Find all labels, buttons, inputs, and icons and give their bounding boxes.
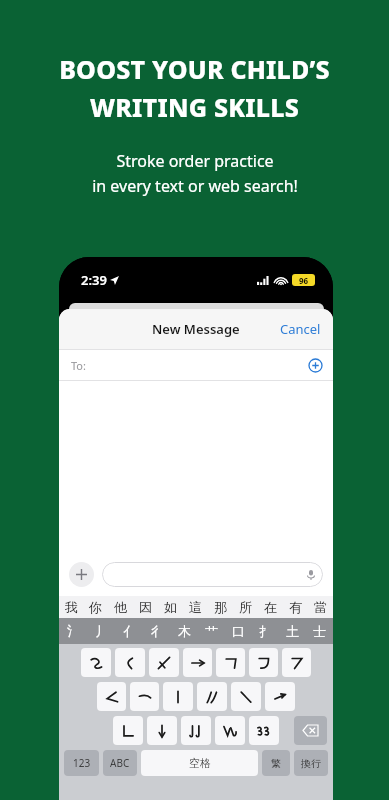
- button[interactable]: 亻: [115, 618, 143, 644]
- button[interactable]: Stroke key 6: [282, 648, 311, 677]
- staticText: 繁: [271, 757, 281, 770]
- button[interactable]: 彳: [143, 618, 171, 644]
- button[interactable]: 123: [64, 750, 99, 776]
- button[interactable]: 當: [308, 596, 333, 618]
- staticText: in every text or web search!: [92, 175, 298, 197]
- button[interactable]: Stroke key 10: [197, 682, 227, 711]
- button[interactable]: Stroke key 14: [147, 716, 177, 745]
- button[interactable]: Stroke key 11: [231, 682, 261, 711]
- button[interactable]: 你: [83, 596, 108, 618]
- button[interactable]: 這: [183, 596, 208, 618]
- button[interactable]: 空格: [141, 750, 258, 776]
- button[interactable]: 口: [225, 618, 252, 644]
- staticText: 丿: [95, 623, 108, 639]
- staticText: To:: [71, 358, 86, 373]
- staticText: 你: [89, 599, 102, 615]
- staticText: 有: [289, 599, 302, 615]
- button[interactable]: 在: [258, 596, 283, 618]
- button[interactable]: 士: [306, 618, 333, 644]
- button[interactable]: Stroke key 5: [249, 648, 278, 677]
- button[interactable]: 木: [171, 618, 198, 644]
- staticText: 當: [314, 599, 327, 615]
- button[interactable]: Stroke key 0: [81, 648, 111, 677]
- staticText: 123: [73, 756, 91, 770]
- button[interactable]: 他: [108, 596, 133, 618]
- button[interactable]: Stroke key 7: [97, 682, 126, 711]
- staticText: 那: [214, 599, 227, 615]
- staticText: 空格: [189, 756, 211, 770]
- button[interactable]: Stroke key 16: [215, 716, 245, 745]
- button[interactable]: 換行: [294, 750, 328, 776]
- button[interactable]: 艹: [198, 618, 225, 644]
- staticText: 他: [114, 599, 127, 615]
- button[interactable]: 因: [133, 596, 158, 618]
- staticText: 這: [189, 599, 202, 615]
- button[interactable]: 那: [208, 596, 233, 618]
- staticText: 彳: [151, 623, 164, 639]
- button[interactable]: 如: [158, 596, 183, 618]
- button[interactable]: Stroke key 3: [183, 648, 212, 677]
- staticText: New Message: [152, 320, 240, 338]
- staticText: 換行: [301, 757, 321, 770]
- staticText: BOOST YOUR CHILD’S: [59, 52, 330, 86]
- button[interactable]: Backspace: [294, 716, 327, 745]
- staticText: 如: [164, 599, 177, 615]
- staticText: 2:39: [81, 271, 107, 289]
- staticText: 我: [65, 599, 78, 615]
- staticText: Cancel: [280, 320, 321, 338]
- button[interactable]: ABC: [103, 750, 137, 776]
- staticText: 96: [299, 275, 309, 286]
- staticText: 扌: [259, 623, 272, 639]
- button[interactable]: Stroke key 2: [149, 648, 179, 677]
- button[interactable]: Stroke key 15: [181, 716, 211, 745]
- staticText: 木: [178, 623, 191, 639]
- staticText: 亻: [123, 623, 136, 639]
- staticText: ABC: [110, 756, 130, 770]
- button[interactable]: Cancel: [268, 312, 333, 346]
- button[interactable]: To:: [59, 350, 333, 380]
- button[interactable]: 氵: [59, 618, 87, 644]
- staticText: 艹: [205, 623, 218, 639]
- button[interactable]: Stroke key 1: [115, 648, 145, 677]
- button[interactable]: Add contact: [308, 358, 323, 373]
- button[interactable]: Stroke key 4: [216, 648, 245, 677]
- staticText: 土: [286, 623, 299, 639]
- button[interactable]: Stroke key 9: [163, 682, 193, 711]
- staticText: WRITING SKILLS: [90, 90, 299, 124]
- button[interactable]: 有: [283, 596, 308, 618]
- staticText: 在: [264, 599, 277, 615]
- button[interactable]: 所: [233, 596, 258, 618]
- staticText: 所: [239, 599, 252, 615]
- button[interactable]: Stroke key 13: [113, 716, 143, 745]
- button[interactable]: 扌: [252, 618, 279, 644]
- staticText: 氵: [67, 623, 80, 639]
- button[interactable]: 我: [59, 596, 83, 618]
- staticText: 口: [232, 623, 245, 639]
- button[interactable]: 繁: [262, 750, 290, 776]
- button[interactable]: Stroke key 8: [130, 682, 159, 711]
- button[interactable]: Add attachment: [69, 562, 94, 587]
- staticText: Stroke order practice: [116, 150, 274, 172]
- button[interactable]: [102, 562, 323, 587]
- staticText: 因: [139, 599, 152, 615]
- button[interactable]: Stroke key 17: [249, 716, 279, 745]
- button[interactable]: 土: [279, 618, 306, 644]
- staticText: 士: [313, 623, 326, 639]
- button[interactable]: 丿: [87, 618, 115, 644]
- button[interactable]: Stroke key 12: [265, 682, 295, 711]
